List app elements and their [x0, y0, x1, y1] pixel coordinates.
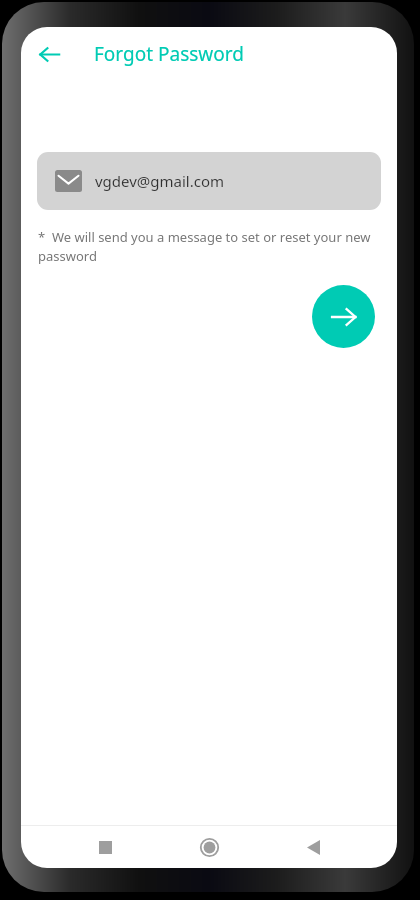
button[interactable]: Back: [27, 32, 71, 76]
button[interactable]: Home: [189, 827, 229, 867]
staticText: Forgot Password: [94, 41, 244, 67]
button[interactable]: Submit: [312, 285, 375, 348]
staticText: * We will send you a message to set or r…: [38, 228, 380, 265]
button[interactable]: vgdev@gmail.com: [37, 152, 381, 210]
staticText: vgdev@gmail.com: [95, 171, 225, 191]
button[interactable]: Back: [293, 827, 333, 867]
button[interactable]: Recent apps: [85, 827, 125, 867]
